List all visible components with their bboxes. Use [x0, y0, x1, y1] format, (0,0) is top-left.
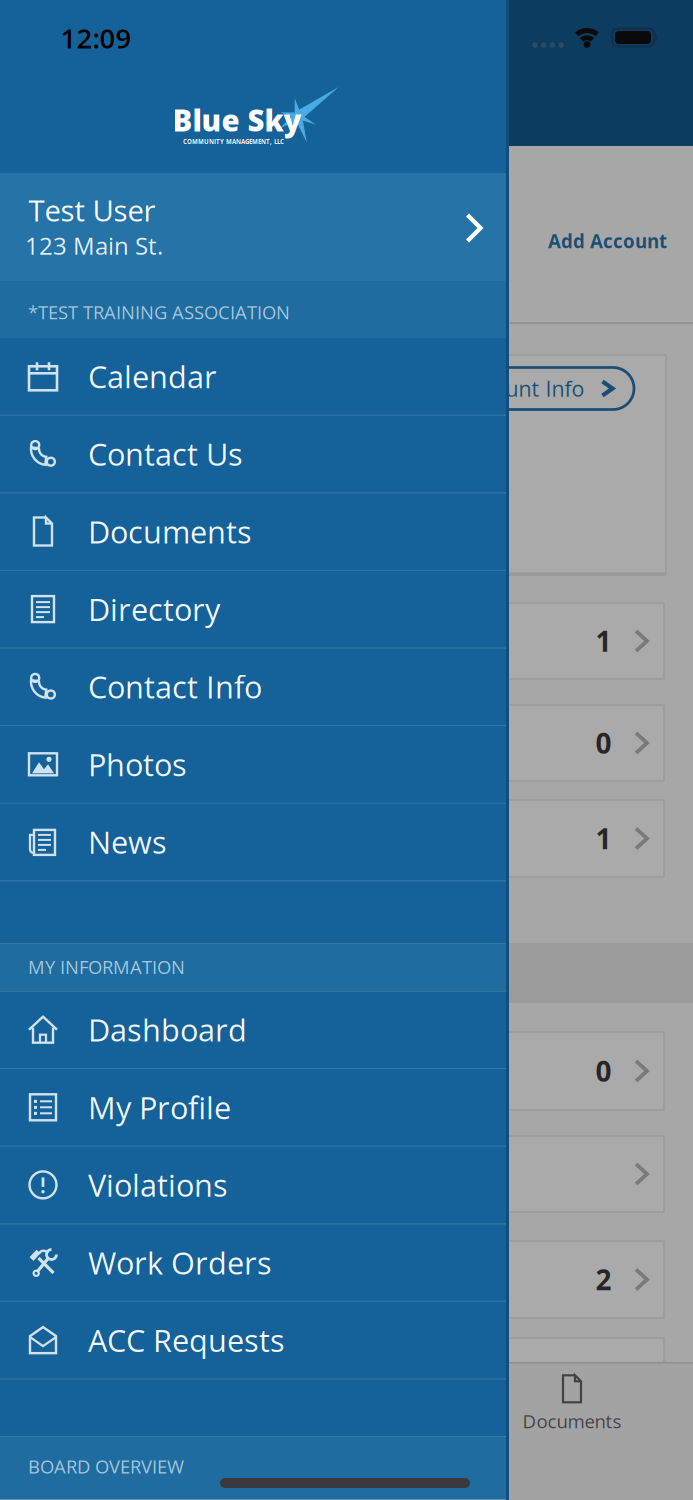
- button[interactable]: 0 items: [300, 705, 664, 781]
- staticText: Violations: [88, 1164, 228, 1206]
- staticText: Contact Us: [88, 433, 243, 475]
- button[interactable]: 1 items: [300, 603, 664, 679]
- button[interactable]: Account Info: [440, 367, 634, 409]
- staticText: *TEST TRAINING ASSOCIATION: [28, 299, 290, 325]
- staticText: COMMUNITY MANAGEMENT, LLC: [183, 137, 284, 146]
- staticText: My Profile: [88, 1086, 231, 1128]
- button[interactable]: Photos: [0, 726, 509, 804]
- staticText: 0: [595, 1052, 611, 1090]
- button[interactable]: Documents: [492, 1366, 652, 1442]
- button[interactable]: Calendar: [0, 338, 509, 416]
- staticText: Directory: [88, 588, 220, 630]
- staticText: Calendar: [88, 355, 217, 397]
- staticText: Documents: [88, 511, 252, 552]
- staticText: BOARD OVERVIEW: [28, 1454, 184, 1479]
- staticText: Contact Info: [88, 666, 262, 708]
- staticText: 2: [595, 1260, 611, 1298]
- button[interactable]: Contact Us: [0, 416, 509, 493]
- button[interactable]: Contact Info: [0, 648, 509, 726]
- button[interactable]: Documents: [0, 493, 509, 571]
- button[interactable]: Work Orders: [0, 1224, 509, 1302]
- staticText: Add Account: [548, 228, 667, 254]
- button[interactable]: 1 items: [300, 800, 664, 877]
- staticText: Dashboard: [88, 1009, 247, 1051]
- button[interactable]: Open details: [300, 1338, 664, 1414]
- button[interactable]: News: [0, 804, 509, 881]
- staticText: News: [88, 821, 167, 863]
- staticText: 123 Main St.: [25, 229, 163, 262]
- button[interactable]: Add Account: [367, 228, 667, 254]
- button[interactable]: My Profile: [0, 1069, 509, 1147]
- staticText: 1: [595, 622, 611, 660]
- button[interactable]: Test User: [0, 173, 509, 281]
- staticText: Blue Sky: [172, 100, 301, 140]
- button[interactable]: Directory: [0, 571, 509, 648]
- button[interactable]: Open details: [300, 1136, 664, 1212]
- staticText: 12:09: [60, 19, 131, 57]
- button[interactable]: 2 items: [300, 1241, 664, 1318]
- staticText: Work Orders: [88, 1242, 272, 1283]
- button[interactable]: 0 items: [300, 1032, 664, 1110]
- staticText: Test User: [28, 190, 155, 230]
- staticText: 0: [595, 724, 611, 762]
- staticText: Documents: [522, 1408, 621, 1434]
- staticText: 1: [595, 819, 611, 857]
- button[interactable]: Violations: [0, 1147, 509, 1224]
- button[interactable]: Dashboard: [0, 991, 509, 1069]
- staticText: Account Info: [459, 374, 584, 403]
- staticText: MY INFORMATION: [28, 954, 185, 979]
- staticText: ACC Requests: [88, 1319, 285, 1361]
- button[interactable]: ACC Requests: [0, 1302, 509, 1379]
- staticText: Photos: [88, 743, 187, 785]
